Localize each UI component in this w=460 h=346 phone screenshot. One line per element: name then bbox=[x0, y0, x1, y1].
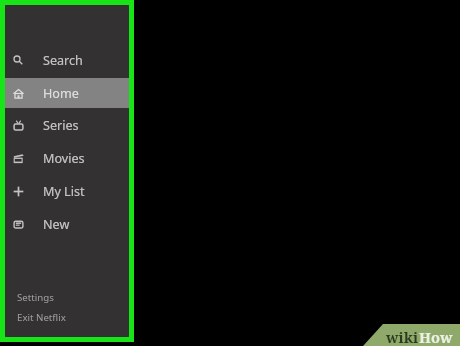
staticText: Exit Netflix bbox=[17, 311, 66, 324]
button[interactable]: Movies bbox=[5, 143, 129, 173]
other: Navigation drawer bbox=[5, 5, 129, 337]
staticText: Search bbox=[43, 52, 83, 69]
staticText: How bbox=[419, 327, 453, 346]
staticText: wiki bbox=[386, 327, 419, 346]
button[interactable]: Settings bbox=[5, 287, 129, 307]
button[interactable]: Search bbox=[5, 45, 129, 75]
staticText: Series bbox=[43, 117, 79, 134]
staticText: Home bbox=[43, 85, 79, 102]
button[interactable]: Exit Netflix bbox=[5, 307, 129, 327]
button[interactable]: New bbox=[5, 209, 129, 239]
staticText: New bbox=[43, 216, 70, 233]
staticText: Movies bbox=[43, 150, 85, 167]
staticText: My List bbox=[43, 183, 85, 200]
button[interactable]: Home bbox=[5, 78, 129, 108]
staticText: Settings bbox=[17, 291, 54, 304]
button[interactable]: Series bbox=[5, 110, 129, 140]
button[interactable]: My List bbox=[5, 176, 129, 206]
